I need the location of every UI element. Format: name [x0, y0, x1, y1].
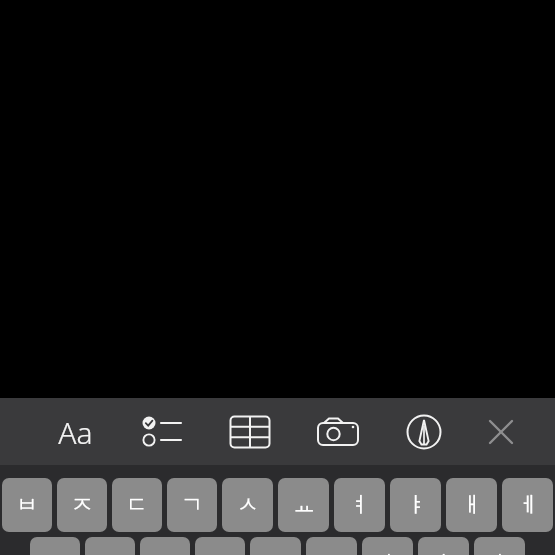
button[interactable]: ㅈ: [57, 478, 107, 532]
button[interactable]: ㄱ: [167, 478, 217, 532]
button[interactable]: ㅂ: [2, 478, 52, 532]
button[interactable]: Checklist: [136, 406, 190, 458]
staticText: ㄱ: [181, 491, 203, 519]
button[interactable]: ㅁ: [30, 537, 80, 555]
staticText: ㅛ: [293, 491, 315, 519]
button[interactable]: ㅅ: [222, 478, 273, 532]
button[interactable]: ㅇ: [140, 537, 190, 555]
button[interactable]: ㅐ: [446, 478, 497, 532]
button[interactable]: ㅎ: [250, 537, 301, 555]
staticText: ㄷ: [126, 491, 148, 519]
staticText: Aa: [58, 412, 93, 453]
button[interactable]: ㄴ: [85, 537, 135, 555]
staticText: ㅐ: [461, 491, 483, 519]
staticText: ㅕ: [349, 491, 371, 519]
button[interactable]: Table: [223, 406, 277, 458]
button[interactable]: ㅏ: [418, 537, 469, 555]
button[interactable]: Text format: [48, 406, 102, 458]
staticText: ㅓ: [377, 550, 399, 555]
button[interactable]: ㅗ: [306, 537, 357, 555]
staticText: ㅑ: [405, 491, 427, 519]
button[interactable]: Markup: [397, 406, 451, 458]
button[interactable]: Close: [474, 406, 528, 458]
button[interactable]: ㅔ: [502, 478, 553, 532]
button[interactable]: ㄹ: [195, 537, 245, 555]
staticText: ㅅ: [237, 491, 259, 519]
button[interactable]: Camera: [311, 406, 365, 458]
staticText: ㅂ: [16, 491, 38, 519]
button[interactable]: ㅕ: [334, 478, 385, 532]
staticText: ㅈ: [71, 491, 93, 519]
button[interactable]: ㅣ: [474, 537, 525, 555]
button[interactable]: ㅛ: [278, 478, 329, 532]
button[interactable]: ㅓ: [362, 537, 413, 555]
staticText: ㅔ: [517, 491, 539, 519]
staticText: ㅏ: [433, 550, 455, 555]
button[interactable]: ㅑ: [390, 478, 441, 532]
staticText: ㅣ: [489, 550, 511, 555]
button[interactable]: ㄷ: [112, 478, 162, 532]
